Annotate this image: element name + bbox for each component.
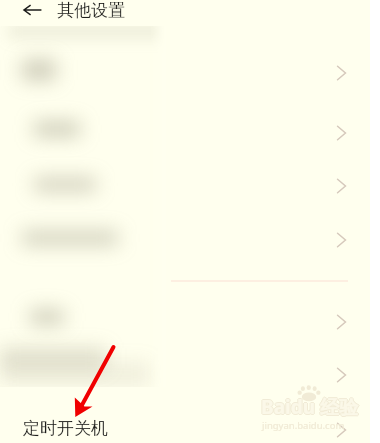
staticText: jingyan.baidu.com (262, 419, 345, 432)
button[interactable]: Open item (318, 408, 364, 443)
staticText: Baidu 经验 (261, 394, 358, 420)
staticText: 定时开关机 (23, 418, 108, 439)
staticText: Baidu 经验 (261, 395, 358, 421)
staticText: Baidu 经验 (260, 394, 357, 420)
button[interactable]: 定时开关机 (0, 414, 370, 443)
button[interactable]: Open item (318, 300, 364, 344)
button[interactable]: Open item (318, 111, 364, 155)
staticText: Baidu 经验 (261, 393, 358, 419)
staticText: 其他设置 (57, 0, 125, 21)
button[interactable]: Open item (318, 353, 364, 397)
button[interactable]: Open item (318, 164, 364, 208)
staticText: Baidu 经验 (262, 394, 359, 420)
button[interactable]: Open item (318, 51, 364, 95)
button[interactable]: Open item (318, 218, 364, 262)
button[interactable]: Back (11, 0, 53, 21)
